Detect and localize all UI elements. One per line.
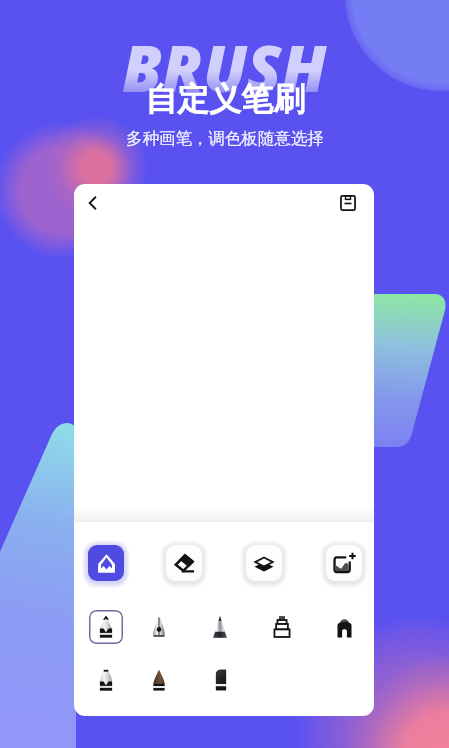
staticText: 多种画笔，调色板随意选择	[126, 128, 324, 149]
button[interactable]: Brush	[265, 610, 299, 644]
staticText: BRUSH	[122, 25, 327, 111]
button[interactable]: Save	[331, 186, 365, 220]
button[interactable]: Brush	[327, 610, 361, 644]
button[interactable]: Brush	[89, 610, 123, 644]
button[interactable]: Brush	[142, 663, 176, 697]
button[interactable]: Brush	[203, 610, 237, 644]
button[interactable]: Brush	[204, 663, 238, 697]
staticText: 自定义笔刷	[145, 79, 305, 119]
button[interactable]: Tool	[166, 545, 202, 581]
button[interactable]: Brush	[142, 610, 176, 644]
button[interactable]: Tool	[326, 545, 362, 581]
button[interactable]: Brush	[89, 663, 123, 697]
button[interactable]: Back	[76, 186, 110, 220]
button[interactable]: Tool	[88, 545, 124, 581]
button[interactable]: Tool	[246, 545, 282, 581]
